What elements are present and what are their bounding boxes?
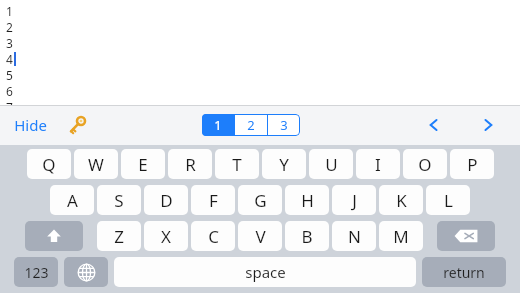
staticText: S <box>114 189 124 212</box>
button[interactable]: Hide <box>12 115 49 135</box>
staticText: L <box>444 189 453 212</box>
staticText: V <box>255 225 266 248</box>
staticText: return <box>443 263 485 282</box>
button[interactable]: B <box>285 221 329 251</box>
staticText: 1 <box>214 116 222 134</box>
staticText: I <box>375 153 381 176</box>
staticText: B <box>301 225 313 248</box>
button[interactable]: F <box>191 185 235 215</box>
staticText: 4 <box>6 51 13 67</box>
staticText: space <box>245 262 286 282</box>
button[interactable]: Next <box>468 110 508 140</box>
staticText: 123 <box>24 263 49 282</box>
staticText: U <box>325 153 338 176</box>
button[interactable]: D <box>144 185 188 215</box>
button[interactable]: L <box>426 185 470 215</box>
button[interactable]: space <box>114 257 416 287</box>
staticText: T <box>232 153 242 176</box>
staticText: C <box>208 225 219 248</box>
staticText: 5 <box>6 67 13 83</box>
staticText: E <box>138 153 148 176</box>
staticText: P <box>467 153 478 176</box>
button[interactable]: J <box>332 185 376 215</box>
button[interactable]: E <box>121 149 165 179</box>
staticText: A <box>67 189 78 212</box>
staticText: G <box>254 189 267 212</box>
staticText: R <box>185 153 196 176</box>
button[interactable]: V <box>238 221 282 251</box>
button[interactable]: 123 <box>14 257 58 287</box>
staticText: 3 <box>280 116 288 134</box>
staticText: 1 <box>6 3 13 19</box>
staticText: K <box>396 189 407 212</box>
button[interactable]: I <box>356 149 400 179</box>
button[interactable]: Backspace <box>437 221 495 251</box>
button[interactable]: 1 <box>202 114 234 136</box>
staticText: O <box>418 153 432 176</box>
button[interactable]: return <box>422 257 506 287</box>
staticText: M <box>393 225 409 248</box>
staticText: 7 <box>6 99 13 105</box>
staticText: 2 <box>6 19 13 35</box>
staticText: X <box>161 225 171 248</box>
button[interactable]: P <box>450 149 494 179</box>
button[interactable]: H <box>285 185 329 215</box>
staticText: J <box>352 189 357 212</box>
staticText: Z <box>114 225 124 248</box>
staticText: F <box>209 189 218 212</box>
button[interactable]: Q <box>27 149 71 179</box>
button[interactable]: N <box>332 221 376 251</box>
button[interactable]: W <box>74 149 118 179</box>
button[interactable]: M <box>379 221 423 251</box>
button[interactable]: Change keyboard <box>64 257 108 287</box>
button[interactable]: Y <box>262 149 306 179</box>
button[interactable]: 2 <box>235 114 267 136</box>
button[interactable]: Previous <box>414 110 454 140</box>
button[interactable]: K <box>379 185 423 215</box>
button[interactable]: C <box>191 221 235 251</box>
staticText: Y <box>279 153 289 176</box>
staticText: 6 <box>6 83 13 99</box>
staticText: N <box>348 225 361 248</box>
button[interactable]: A <box>50 185 94 215</box>
staticText: Q <box>42 153 56 176</box>
staticText: Hide <box>14 115 47 135</box>
button[interactable]: Z <box>97 221 141 251</box>
staticText: D <box>160 189 173 212</box>
button[interactable]: U <box>309 149 353 179</box>
staticText: H <box>301 189 314 212</box>
button[interactable]: Shift <box>25 221 83 251</box>
button[interactable]: Password key <box>65 113 89 137</box>
button[interactable]: X <box>144 221 188 251</box>
button[interactable]: T <box>215 149 259 179</box>
button[interactable]: O <box>403 149 447 179</box>
staticText: 3 <box>6 35 13 51</box>
staticText: 2 <box>247 116 255 134</box>
button[interactable]: G <box>238 185 282 215</box>
button[interactable]: R <box>168 149 212 179</box>
button[interactable]: S <box>97 185 141 215</box>
button[interactable]: 3 <box>268 114 300 136</box>
staticText: W <box>88 153 104 176</box>
